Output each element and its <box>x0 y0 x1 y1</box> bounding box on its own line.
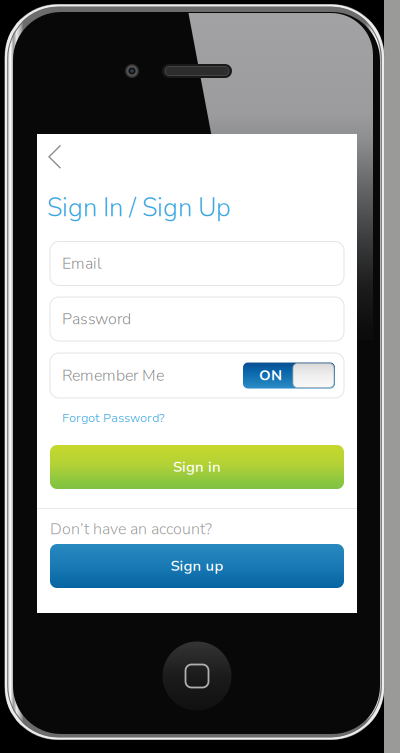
button[interactable]: Remember Me toggle, on <box>243 362 335 388</box>
button[interactable]: Forgot Password? <box>37 407 357 429</box>
staticText: Remember Me <box>62 365 164 386</box>
staticText: Forgot Password? <box>62 410 165 426</box>
button[interactable]: Back <box>37 134 71 178</box>
staticText: Sign In / Sign Up <box>47 191 231 225</box>
staticText: Don’t have an account? <box>50 518 212 540</box>
staticText: Email <box>62 253 102 274</box>
staticText: ON <box>259 365 282 385</box>
button[interactable]: Sign up <box>50 544 344 588</box>
staticText: Sign up <box>170 556 223 576</box>
button[interactable]: Sign in <box>50 445 344 489</box>
staticText: Sign in <box>173 457 221 477</box>
staticText: Password <box>62 308 131 330</box>
